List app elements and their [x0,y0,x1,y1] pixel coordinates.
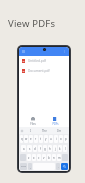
staticText: w [25,137,28,141]
staticText: f [40,147,41,151]
staticText: e [30,137,32,141]
staticText: Untitled.pdf [28,59,46,63]
button[interactable]: k [58,145,62,152]
button[interactable]: Files [24,116,42,127]
button[interactable]: r [34,135,38,143]
staticText: h [49,147,51,151]
staticText: y [45,137,47,141]
button[interactable]: y [44,135,48,143]
button[interactable]: m [57,154,61,161]
button[interactable]: f [38,145,42,152]
button[interactable]: More options [62,49,67,54]
button[interactable]: x [32,154,36,161]
button[interactable]: I'm [57,129,62,133]
button[interactable]: b [47,154,51,161]
button[interactable]: Search [61,163,68,170]
button[interactable]: a [21,145,26,152]
staticText: c [38,156,40,160]
staticText: Files [30,122,36,126]
button[interactable]: PDFs [46,116,64,127]
staticText: u [50,137,52,141]
staticText: b [48,156,50,160]
button[interactable]: I [30,129,31,133]
button[interactable]: e [29,135,33,143]
staticText: p [65,137,67,141]
button[interactable]: The [42,129,47,133]
staticText: , [30,165,31,169]
staticText: n [53,156,55,160]
button[interactable]: q [20,135,23,143]
button[interactable]: ?123 [20,163,27,170]
button[interactable]: c [37,154,41,161]
button[interactable]: g [43,145,47,152]
button[interactable]: . [56,163,60,170]
button[interactable]: u [49,135,53,143]
staticText: a [23,147,25,151]
staticText: z [28,156,30,160]
button[interactable]: t [39,135,43,143]
button[interactable]: s [27,145,32,152]
staticText: m [58,156,61,160]
staticText: o [60,137,62,141]
button[interactable]: , [28,163,32,170]
staticText: PDFs [52,122,59,126]
staticText: x [33,156,35,160]
staticText: j [55,147,56,151]
staticText: . [58,165,59,169]
button[interactable]: v [42,154,46,161]
button[interactable]: d [33,145,37,152]
staticText: Document.pdf [28,69,50,73]
button[interactable]: Document.pdf [19,66,69,76]
button[interactable]: n [52,154,56,161]
staticText: g [44,147,46,151]
staticText: View PDFs [8,17,56,30]
staticText: t [40,137,42,141]
staticText: r [35,137,37,141]
staticText: k [59,147,61,151]
staticText: s [29,147,31,151]
button[interactable]: w [24,135,28,143]
button[interactable]: h [48,145,52,152]
button[interactable]: j [53,145,57,152]
button[interactable]: p [64,135,68,143]
staticText: q [21,137,23,141]
button[interactable]: i [54,135,58,143]
button[interactable]: Menu [21,49,26,54]
button[interactable]: z [27,154,31,161]
staticText: d [34,147,36,151]
button[interactable]: l [63,145,67,152]
button[interactable]: Untitled.pdf [19,56,69,66]
staticText: v [43,156,45,160]
button[interactable]: o [59,135,63,143]
staticText: l [65,147,66,151]
staticText: i [56,137,57,141]
staticText: ?123 [21,165,26,168]
